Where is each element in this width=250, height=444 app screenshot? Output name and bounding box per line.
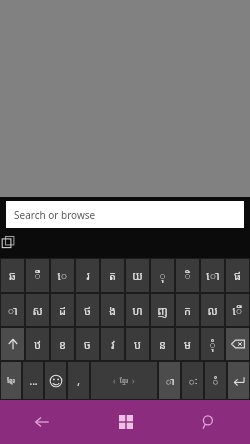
- button[interactable]: ត: [101, 259, 124, 292]
- button[interactable]: Space: [91, 362, 157, 399]
- staticText: ោ: [206, 268, 220, 283]
- button[interactable]: ោ: [201, 259, 224, 292]
- staticText: ខ្មែរ: [116, 376, 132, 386]
- staticText: ច: [84, 337, 91, 352]
- staticText: ិ: [184, 268, 191, 283]
- staticText: ំ: [212, 374, 219, 388]
- button[interactable]: Enter: [228, 362, 249, 399]
- button[interactable]: រ: [76, 259, 99, 292]
- button[interactable]: ថ: [76, 294, 99, 326]
- button[interactable]: Search or browse: [6, 201, 244, 228]
- button[interactable]: ...: [23, 362, 43, 399]
- button[interactable]: ា: [1, 294, 24, 326]
- staticText: ហ: [132, 303, 143, 318]
- button[interactable]: ើ: [226, 294, 249, 326]
- button[interactable]: ប: [126, 328, 149, 360]
- button[interactable]: ល: [201, 294, 224, 326]
- button[interactable]: ស: [26, 294, 49, 326]
- staticText: ៈ: [188, 374, 198, 388]
- button[interactable]: ុំ: [201, 328, 224, 360]
- staticText: ប: [134, 337, 141, 352]
- button[interactable]: Emoji: [45, 362, 66, 399]
- staticText: ផ: [234, 268, 241, 283]
- button[interactable]: ហ: [126, 294, 149, 326]
- staticText: ឹ: [34, 268, 41, 283]
- staticText: យ: [132, 268, 143, 283]
- button[interactable]: ឹ: [26, 259, 49, 292]
- button[interactable]: ំ: [205, 362, 226, 399]
- staticText: ឆ: [9, 268, 16, 283]
- staticText: ត: [109, 268, 116, 283]
- button[interactable]: Start: [84, 400, 167, 444]
- button[interactable]: ដ: [51, 294, 74, 326]
- button[interactable]: ខ: [51, 328, 74, 360]
- button[interactable]: ផ: [226, 259, 249, 292]
- button[interactable]: ,: [68, 362, 89, 399]
- staticText: ន: [159, 337, 166, 352]
- staticText: ឋ: [34, 337, 41, 352]
- button[interactable]: Search: [167, 400, 250, 444]
- staticText: ុ: [159, 268, 166, 283]
- button[interactable]: Back: [0, 400, 84, 444]
- staticText: ើ: [232, 303, 243, 318]
- button[interactable]: ៈ: [182, 362, 203, 399]
- staticText: ម: [184, 337, 191, 352]
- staticText: ដ: [59, 303, 66, 318]
- button[interactable]: ម: [176, 328, 199, 360]
- button[interactable]: Backspace: [226, 328, 249, 360]
- button[interactable]: ន: [151, 328, 174, 360]
- staticText: ុំ: [209, 337, 216, 352]
- staticText: ង: [109, 303, 116, 318]
- button[interactable]: ច: [76, 328, 99, 360]
- button[interactable]: ង: [101, 294, 124, 326]
- staticText: ក: [184, 303, 191, 318]
- button[interactable]: ខ្មែរ: [1, 362, 21, 399]
- staticText: ខ: [59, 337, 66, 352]
- staticText: ›: [132, 375, 135, 386]
- staticText: ា: [7, 303, 18, 318]
- staticText: ខ្មែរ: [7, 377, 15, 385]
- button[interactable]: ិ: [176, 259, 199, 292]
- staticText: ‹: [113, 375, 116, 386]
- staticText: Search or browse: [14, 208, 96, 222]
- staticText: ញ: [157, 303, 168, 318]
- button[interactable]: វ: [101, 328, 124, 360]
- staticText: ស: [32, 303, 43, 318]
- button[interactable]: ឋ: [26, 328, 49, 360]
- staticText: េ: [57, 268, 68, 283]
- staticText: ល: [207, 303, 218, 318]
- button[interactable]: Clipboard: [1, 235, 16, 250]
- staticText: ...: [29, 374, 38, 388]
- button[interactable]: ញ: [151, 294, 174, 326]
- button[interactable]: យ: [126, 259, 149, 292]
- button[interactable]: ុ: [151, 259, 174, 292]
- button[interactable]: ឆ: [1, 259, 24, 292]
- staticText: វ: [111, 337, 115, 352]
- button[interactable]: ក: [176, 294, 199, 326]
- staticText: ,: [77, 374, 80, 388]
- staticText: រ: [86, 268, 90, 283]
- staticText: ថ: [84, 303, 91, 318]
- staticText: ា: [165, 374, 175, 388]
- button[interactable]: េ: [51, 259, 74, 292]
- button[interactable]: ា: [159, 362, 180, 399]
- button[interactable]: Shift: [1, 328, 24, 360]
